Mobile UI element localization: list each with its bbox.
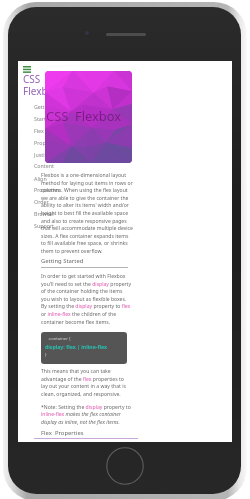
staticText: sizes. A flex container expands items [41,233,129,240]
button[interactable]: Menu [23,66,31,73]
button[interactable]: Support [34,222,55,229]
staticText: CSS [23,72,41,86]
staticText: you'll need to set the display property [41,281,132,288]
staticText: display as inline, not the flex items. [41,419,120,426]
staticText: In order to get started with Flexbox [41,273,126,280]
button[interactable]: Starting [34,115,54,122]
staticText: } [45,352,47,358]
staticText: Properties [34,139,60,146]
button[interactable]: Properties [34,186,60,193]
staticText: Starting [34,115,54,122]
staticText: Flex Properties [41,429,84,437]
staticText: of the container holding the items [41,288,123,295]
staticText: Support [34,222,55,229]
staticText: we are able to give the container the [41,195,129,202]
staticText: CSS Flexbox [46,107,122,125]
staticText: that will accommodate multiple device [41,225,133,232]
button[interactable]: Properties [34,139,60,146]
staticText: or inline-flex the children of the [41,311,117,318]
staticText: Getting Started [34,103,73,110]
staticText: you wish to layout as flexible boxes. [41,296,127,303]
button[interactable]: Align [34,175,47,182]
staticText: Justify [34,151,50,158]
staticText: them to prevent overflow. [41,248,103,255]
staticText: Content [34,162,54,169]
staticText: By setting the display property to flex [41,303,131,310]
staticText: advantage of the flex properties to [41,376,124,383]
staticText: display: flex | inline-flex [45,343,108,350]
staticText: inline-flex makes the flex container [41,411,121,418]
button[interactable]: Content [34,162,54,169]
staticText: This means that you can take [41,368,111,375]
staticText: Browser [34,210,55,217]
staticText: *Note: Setting the display property to [41,404,131,411]
staticText: Flex [34,127,44,134]
staticText: Getting Started [41,257,84,265]
staticText: columns. When using the flex layout [41,187,128,194]
staticText: and also to create responsive pages [41,218,127,225]
staticText: Flexbox [23,84,59,98]
staticText: Order [34,198,49,205]
staticText: height to best fill the available space [41,210,129,217]
button[interactable]: Browser [34,210,55,217]
staticText: clean, organized, and responsive. [41,391,121,398]
staticText: ability to alter its items' width and/or [41,202,129,209]
staticText: to fill available free space, or shrinks [41,240,128,247]
button[interactable]: Order [34,198,49,205]
button[interactable]: Flex [34,127,44,134]
button[interactable]: Justify [34,151,50,158]
staticText: Flexbox is a one-dimensional layout [41,172,127,179]
staticText: Align [34,175,47,182]
button[interactable]: Home [106,447,144,485]
staticText: lay out your content in a way that is [41,383,126,390]
staticText: Properties [34,186,60,193]
button[interactable]: CSS Flexbox [45,71,132,163]
staticText: method for laying out items in rows or [41,180,133,187]
button[interactable]: Getting Started [34,103,73,110]
staticText: .container { [48,336,71,342]
staticText: container become flex items. [41,319,111,326]
